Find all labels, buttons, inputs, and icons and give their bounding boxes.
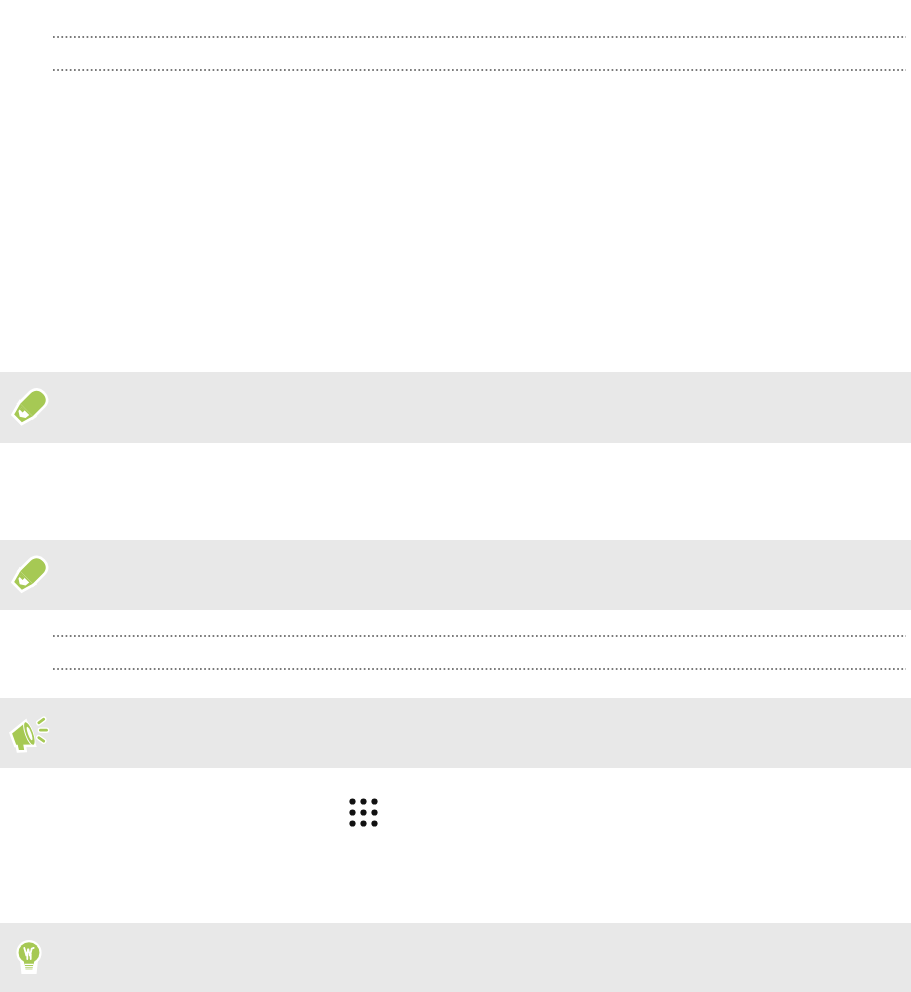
button[interactable]: Note (0, 372, 911, 443)
button[interactable]: Tip (0, 923, 911, 992)
button[interactable]: Announcement (0, 698, 911, 768)
button[interactable]: Note (0, 540, 911, 610)
button[interactable]: All apps (344, 793, 383, 832)
